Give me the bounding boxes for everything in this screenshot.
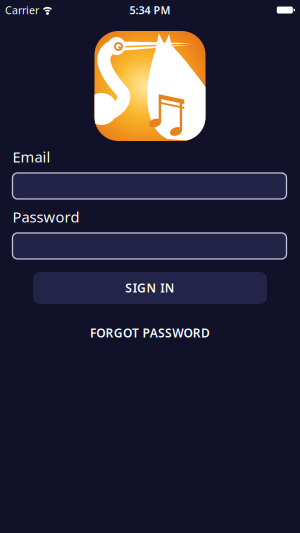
staticText: Password bbox=[12, 207, 79, 226]
button[interactable]: Password bbox=[12, 233, 286, 259]
staticText: SIGN IN bbox=[125, 280, 175, 296]
button[interactable]: Email bbox=[12, 173, 286, 199]
button[interactable]: FORGOT PASSWORD bbox=[90, 325, 210, 341]
staticText: Carrier bbox=[5, 3, 39, 17]
staticText: FORGOT PASSWORD bbox=[90, 325, 210, 341]
button[interactable]: SIGN IN bbox=[33, 272, 267, 304]
staticText: Email bbox=[12, 147, 50, 166]
staticText: 5:34 PM bbox=[129, 3, 170, 17]
